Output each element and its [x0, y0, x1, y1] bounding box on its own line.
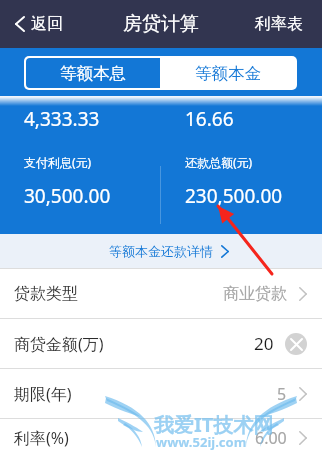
staticText: 支付利息(元) — [24, 154, 92, 170]
staticText: 等额本金 — [195, 63, 261, 84]
button[interactable]: 清除 — [285, 333, 307, 355]
staticText: 230,500.00 — [185, 183, 283, 209]
staticText: 期限(年) — [14, 383, 72, 405]
staticText: 等额本金还款详情 — [109, 243, 213, 259]
staticText: 还款总额(元) — [185, 154, 253, 170]
staticText: 30,500.00 — [24, 183, 111, 209]
staticText: 利率表 — [255, 14, 303, 34]
button[interactable]: 利率表 — [236, 2, 322, 46]
staticText: 房贷计算 — [123, 12, 199, 36]
staticText: 我爱IT技术网 — [154, 411, 274, 438]
staticText: 贷款类型 — [14, 284, 78, 304]
staticText: www.52ij.com — [156, 433, 247, 451]
staticText: 商贷金额(万) — [14, 333, 104, 355]
staticText: 5 — [277, 383, 287, 405]
staticText: 20 — [254, 332, 274, 355]
staticText: 商业贷款 — [223, 284, 287, 304]
button[interactable]: 等额本金还款详情 — [0, 234, 322, 268]
button[interactable]: 贷款类型 — [0, 269, 322, 318]
button[interactable]: 商贷金额(万) — [0, 319, 322, 368]
button[interactable]: 等额本金 — [160, 58, 295, 88]
staticText: 等额本息 — [60, 63, 126, 84]
button[interactable]: 期限(年) — [0, 369, 322, 418]
button[interactable]: 等额本息 — [26, 58, 160, 88]
button[interactable]: 利率(%) — [0, 419, 322, 457]
staticText: 16.66 — [185, 106, 234, 132]
staticText: 利率(%) — [14, 427, 69, 449]
staticText: 4,333.33 — [24, 106, 100, 132]
button[interactable]: 返回 — [0, 5, 77, 43]
staticText: 6.00 — [255, 427, 287, 449]
staticText: 返回 — [31, 14, 63, 34]
